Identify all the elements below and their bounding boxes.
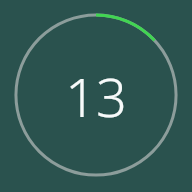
button[interactable]: Progress 13 percent bbox=[0, 0, 192, 192]
staticText: 13 bbox=[65, 59, 127, 133]
